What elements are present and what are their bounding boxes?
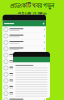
button[interactable] <box>2 33 46 39</box>
button[interactable] <box>2 84 46 90</box>
button[interactable] <box>2 65 46 71</box>
button[interactable] <box>2 39 46 46</box>
button[interactable] <box>2 58 46 65</box>
button[interactable] <box>2 71 46 78</box>
button[interactable] <box>2 52 46 58</box>
button[interactable] <box>2 26 46 33</box>
button[interactable] <box>2 78 46 84</box>
staticText: সহজে ও দ্রুত <box>17 10 46 18</box>
button[interactable] <box>2 97 46 100</box>
button[interactable] <box>2 90 46 97</box>
staticText: প্রত্যেকটি খবর পড়ুন <box>10 3 54 10</box>
button[interactable] <box>2 46 46 52</box>
